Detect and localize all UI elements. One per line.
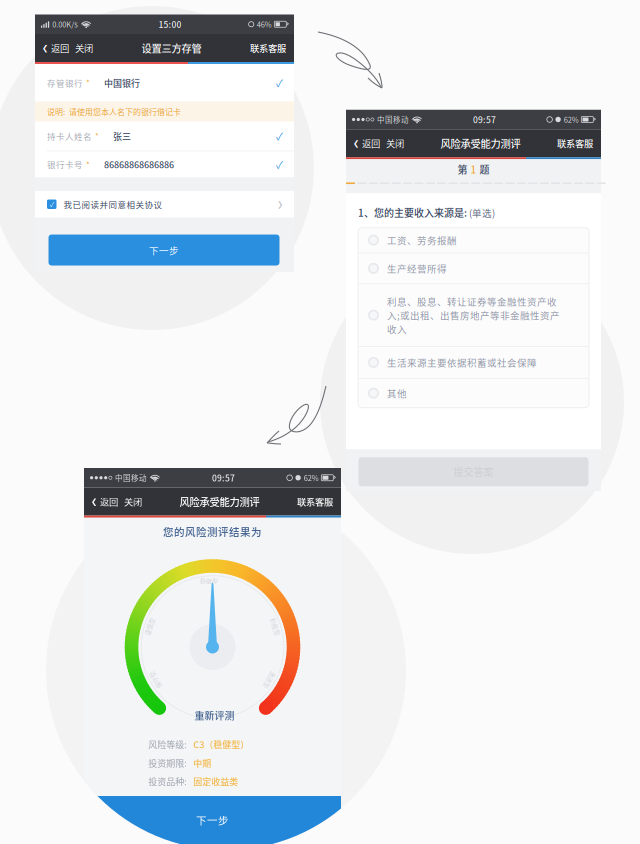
staticText: 设置三方存管 (141, 40, 201, 55)
staticText: 风险承受能力测评 (440, 136, 520, 151)
staticText: 联系客服 (297, 495, 333, 508)
staticText: (单选) (467, 206, 495, 219)
staticText: 下一步 (196, 812, 229, 828)
staticText: ✓ (276, 129, 283, 143)
staticText: ❮ (91, 497, 97, 506)
staticText: 0.00K/s (52, 19, 78, 30)
staticText: * (86, 159, 90, 170)
button[interactable]: 其他 (358, 379, 589, 408)
button[interactable]: ✓ (35, 191, 294, 217)
staticText: C3（稳健型） (193, 738, 249, 751)
button[interactable]: 关闭 (75, 41, 93, 55)
staticText: 中国银行 (104, 76, 140, 89)
button[interactable]: ❮ (91, 495, 118, 508)
staticText: 下一步 (149, 243, 179, 257)
staticText: 题 (479, 162, 489, 176)
staticText: 关闭 (124, 495, 142, 508)
staticText: 存管银行 (47, 77, 83, 89)
staticText: 09:57 (212, 472, 235, 484)
button[interactable]: 联系客服 (250, 41, 286, 55)
staticText: 09:57 (473, 113, 496, 126)
button[interactable]: 生活来源主要依据积蓄或社会保障 (358, 347, 589, 378)
staticText: 关闭 (386, 136, 404, 150)
staticText: 固定收益类 (193, 775, 238, 788)
staticText: 投资品种: (148, 775, 187, 788)
staticText: 15:00 (158, 18, 181, 30)
staticText: 生产经营所得 (387, 261, 447, 275)
button[interactable]: 关闭 (386, 136, 404, 150)
staticText: 中国移动 (115, 472, 147, 483)
staticText: 第 (457, 162, 467, 176)
staticText: 稳健型 (200, 576, 218, 585)
button[interactable]: 下一步 (84, 796, 341, 844)
staticText: 中国移动 (377, 114, 409, 125)
button[interactable]: 利息、股息、转让证券等金融性资产收 入;或出租、出售房地产等非金融性资产 收入 (358, 284, 589, 346)
staticText: 86868868686886 (104, 158, 174, 171)
button[interactable]: 关闭 (124, 495, 142, 508)
button[interactable]: 重新评测 (194, 708, 234, 722)
button[interactable]: 下一步 (48, 234, 279, 265)
staticText: 其他 (387, 386, 407, 400)
staticText: 持卡人姓名 (47, 130, 92, 142)
staticText: 激进型 (261, 676, 279, 684)
staticText: 工资、劳务报酬 (387, 233, 457, 247)
staticText: 1、您的主要收入来源是: (358, 205, 467, 220)
staticText: 返回 (51, 41, 69, 55)
staticText: 联系客服 (250, 41, 286, 55)
staticText: 1 (470, 162, 476, 176)
staticText: 风险承受能力测评 (179, 494, 259, 509)
staticText: 谨慎型 (140, 622, 158, 631)
button[interactable]: ❮ (353, 136, 380, 150)
staticText: 说明: (47, 106, 65, 117)
staticText: 张三 (113, 129, 131, 142)
staticText: 62% (564, 114, 579, 125)
button[interactable]: 工资、劳务报酬 (358, 228, 589, 252)
staticText: ❮ (42, 44, 48, 52)
staticText: 联系客服 (557, 136, 593, 150)
staticText: 关闭 (75, 41, 93, 55)
button[interactable]: 联系客服 (297, 495, 333, 508)
staticText: 中期 (193, 756, 211, 769)
staticText: 46% (257, 19, 272, 30)
staticText: 积极型 (266, 622, 284, 631)
button[interactable]: ❮ (42, 41, 69, 55)
staticText: 返回 (100, 495, 118, 508)
staticText: ✓ (50, 199, 54, 209)
staticText: 风险等级: (148, 738, 187, 751)
staticText: 生活来源主要依据积蓄或社会保障 (387, 356, 537, 369)
staticText: 银行卡号 (47, 158, 83, 170)
staticText: 利息、股息、转让证券等金融性资产收 入;或出租、出售房地产等非金融性资产 收入 (387, 294, 560, 336)
staticText: 投资期限: (148, 756, 187, 769)
staticText: ❮ (353, 139, 359, 148)
button[interactable]: 生产经营所得 (358, 253, 589, 283)
staticText: 62% (304, 472, 319, 483)
staticText: 重新评测 (194, 708, 234, 722)
staticText: 您的风险测评结果为 (163, 524, 262, 539)
button[interactable]: 联系客服 (557, 136, 593, 150)
staticText: * (95, 130, 99, 142)
staticText: ✓ (276, 75, 283, 90)
staticText: 请使用您本人名下的银行借记卡 (69, 106, 181, 117)
staticText: 提交答案 (453, 464, 493, 479)
staticText: 我已阅读并同意相关协议 (63, 198, 162, 210)
staticText: 保守型 (146, 676, 164, 684)
staticText: ✓ (276, 157, 283, 172)
staticText: ❯ (277, 200, 283, 209)
staticText: 返回 (362, 136, 380, 150)
staticText: * (86, 77, 90, 89)
